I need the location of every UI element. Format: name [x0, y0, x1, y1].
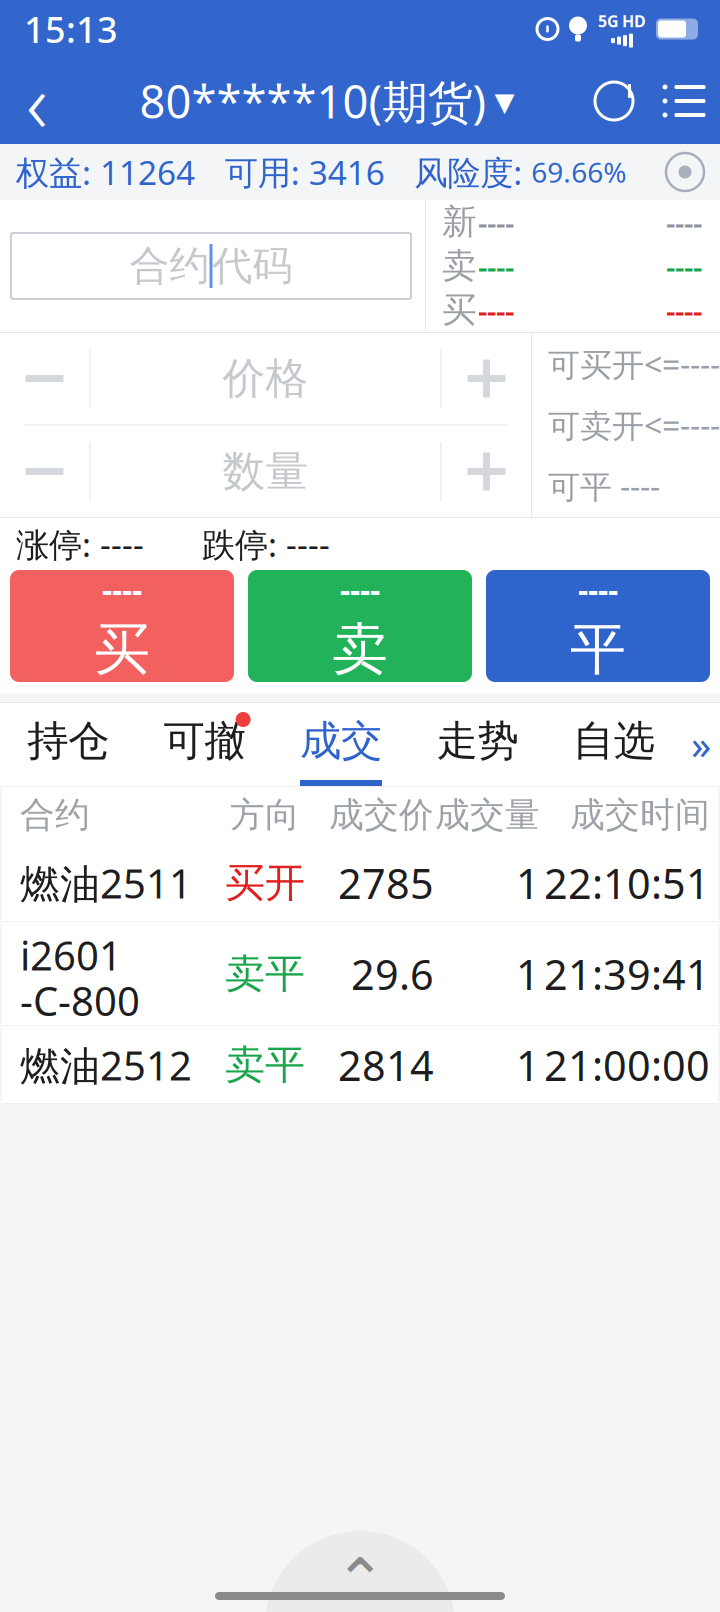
staticText: 可卖开<=---- [548, 404, 720, 446]
staticText: 买 [94, 615, 150, 684]
staticText: ---- [578, 568, 618, 611]
staticText: 持仓 [27, 716, 109, 766]
staticText: ---- [666, 246, 702, 285]
button[interactable]: ---- [10, 570, 234, 682]
staticText: 数量 [222, 445, 308, 498]
button[interactable]: 风险度: [414, 150, 626, 194]
staticText: 跌停: ---- [202, 522, 330, 566]
staticText: ---- [478, 290, 514, 329]
staticText: 1 [516, 856, 540, 910]
staticText: 5G [598, 10, 619, 32]
staticText: 成交 [300, 716, 382, 766]
button[interactable]: Menu [648, 58, 720, 144]
button[interactable]: 持仓 [0, 702, 136, 786]
staticText: 卖平 [225, 949, 305, 998]
button[interactable]: Increase [441, 425, 531, 517]
staticText: 合约 [129, 241, 209, 290]
staticText: 1 [516, 947, 540, 1001]
staticText: 2814 [338, 1038, 434, 1092]
staticText: 燃油2512 [20, 1038, 192, 1091]
staticText: 平 [570, 615, 626, 684]
staticText: 可买开<=---- [548, 343, 720, 385]
staticText: 燃油2511 [20, 856, 192, 909]
button[interactable]: 权益: 11264 [0, 150, 195, 194]
button[interactable]: Decrease [0, 425, 89, 517]
staticText: ---- [340, 568, 380, 611]
staticText: 买 [442, 289, 477, 331]
staticText: 走势 [436, 716, 518, 766]
button[interactable]: 走势 [409, 702, 546, 786]
staticText: 22:10:51 [544, 856, 710, 910]
staticText: 可用: 3416 [225, 150, 385, 194]
staticText: 代码 [212, 241, 292, 290]
staticText: 可撤 [164, 716, 246, 766]
button[interactable]: Increase [441, 332, 531, 424]
staticText: ---- [666, 290, 702, 329]
button[interactable]: 合约 [0, 233, 425, 299]
button[interactable]: Decrease [0, 332, 89, 424]
staticText: 涨停: ---- [16, 522, 144, 566]
staticText: 卖平 [225, 1040, 305, 1089]
staticText: HD [622, 10, 646, 32]
staticText: ---- [102, 568, 142, 611]
button[interactable]: Back [0, 58, 74, 144]
button[interactable]: More tabs [682, 702, 720, 786]
staticText: 80*****10(期货) [139, 71, 486, 131]
button[interactable]: 自选 [546, 702, 682, 786]
staticText: ⌃ [334, 1546, 385, 1612]
button[interactable]: 燃油2511 [2, 844, 718, 922]
staticText: 2785 [338, 856, 434, 910]
staticText: 自选 [573, 716, 655, 766]
button[interactable]: 80*****10(期货) [131, 58, 522, 144]
staticText: -C-800 [20, 974, 140, 1027]
staticText: 权益: 11264 [16, 150, 195, 194]
staticText: 卖 [442, 245, 477, 287]
button[interactable]: i2601 [2, 922, 718, 1026]
staticText: 价格 [222, 352, 308, 405]
button[interactable]: 价格 [90, 332, 440, 424]
button[interactable]: 可用: 3416 [225, 150, 385, 194]
staticText: 1 [516, 1038, 540, 1092]
staticText: ‹ [26, 46, 48, 156]
staticText: ---- [478, 246, 514, 285]
staticText: 买开 [225, 858, 305, 907]
staticText: 风险度: [414, 150, 531, 194]
staticText: 可平 ---- [548, 465, 660, 507]
staticText: 成交量 [435, 794, 540, 836]
staticText: i2601 [20, 928, 122, 981]
staticText: ▾ [494, 78, 514, 124]
staticText: 方向 [230, 794, 300, 836]
staticText: 卖 [332, 615, 388, 684]
staticText: 合约 [20, 794, 90, 836]
button[interactable]: 数量 [90, 425, 440, 517]
staticText: ---- [666, 202, 702, 241]
staticText: 15:13 [24, 5, 118, 53]
staticText: 成交价 [329, 794, 434, 836]
staticText: 21:00:00 [544, 1038, 710, 1092]
staticText: 69.66% [531, 153, 626, 191]
staticText: 29.6 [351, 947, 434, 1001]
staticText: 新 [442, 201, 477, 243]
button[interactable]: 可撤 [136, 702, 273, 786]
staticText: » [691, 717, 711, 770]
button[interactable]: 燃油2512 [2, 1026, 718, 1104]
button[interactable]: 成交 [273, 702, 409, 786]
staticText: 成交时间 [570, 794, 710, 836]
button[interactable]: ---- [248, 570, 472, 682]
staticText: ---- [478, 202, 514, 241]
button[interactable]: Refresh [580, 58, 648, 144]
button[interactable]: ---- [486, 570, 710, 682]
staticText: 21:39:41 [544, 947, 710, 1001]
button[interactable]: Toggle balance visibility [656, 144, 714, 200]
